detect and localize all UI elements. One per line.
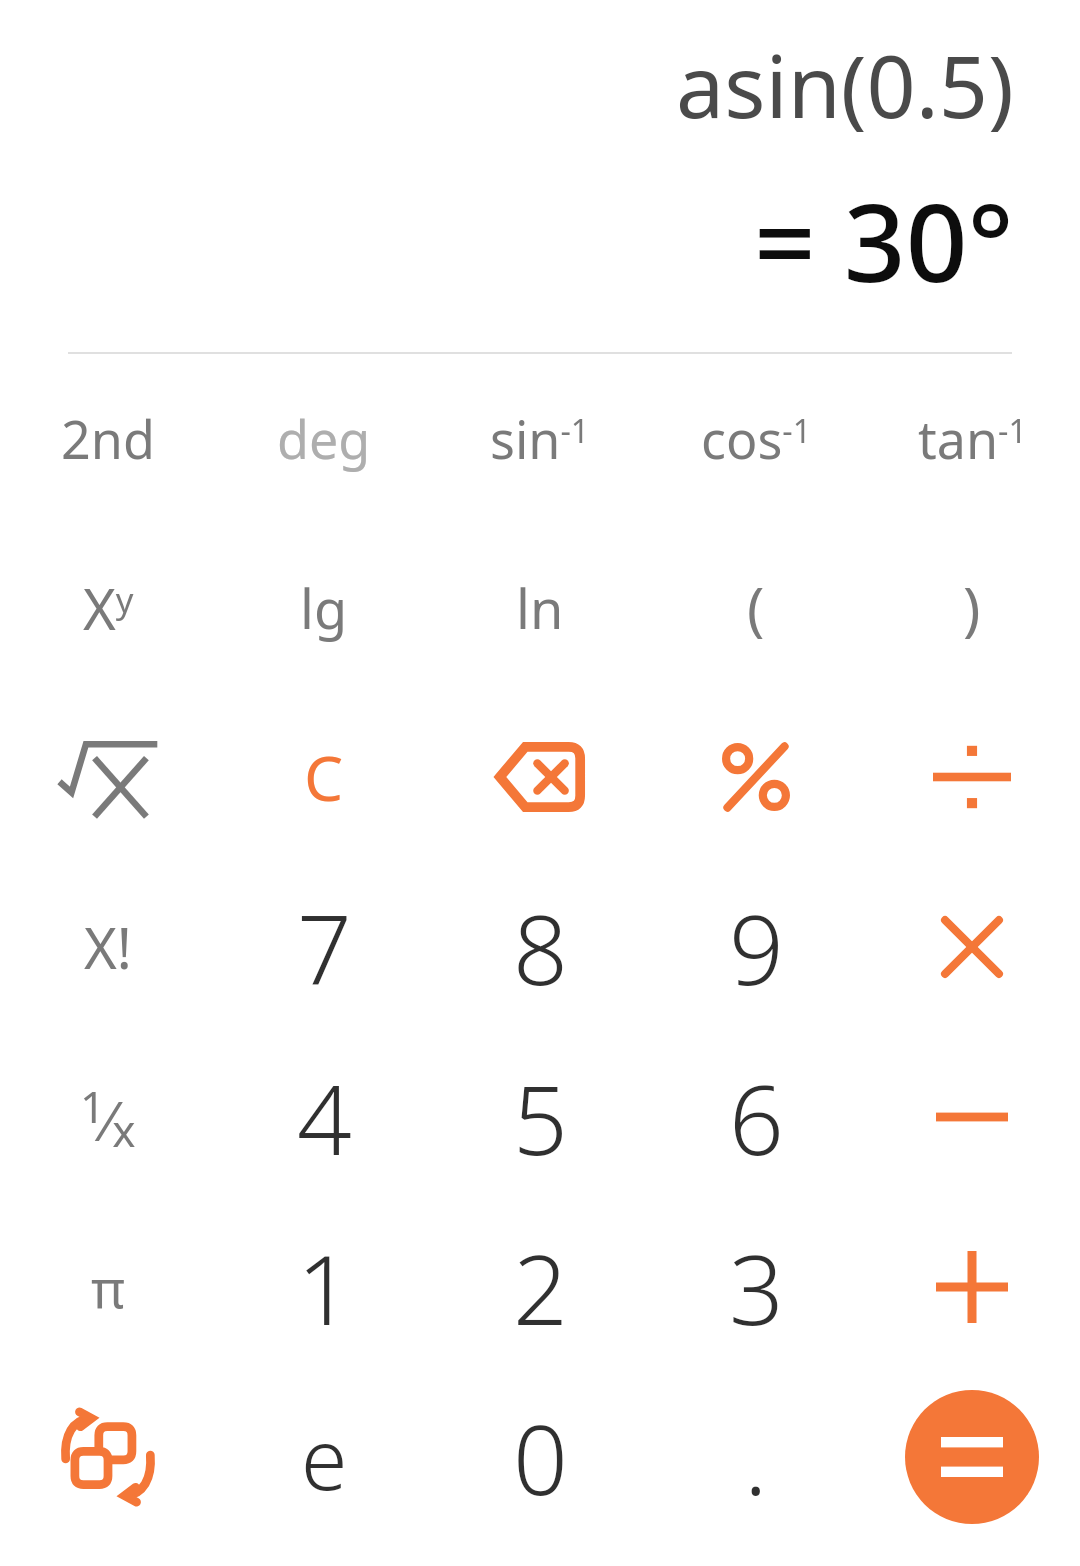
button[interactable]: Minus xyxy=(864,1032,1080,1202)
staticText: 7 xyxy=(297,882,352,1013)
button[interactable]: 2 xyxy=(432,1202,648,1372)
staticText: ( xyxy=(747,568,765,647)
button[interactable]: cos-1 xyxy=(648,354,864,523)
button[interactable]: deg xyxy=(216,354,432,523)
button[interactable]: 7 xyxy=(216,862,432,1032)
button[interactable]: Backspace xyxy=(432,692,648,862)
button[interactable]: 2nd xyxy=(0,354,216,523)
staticText: cos-1 xyxy=(701,403,812,474)
button[interactable]: 8 xyxy=(432,862,648,1032)
staticText: lg xyxy=(300,571,348,645)
staticText: 6 xyxy=(729,1052,784,1183)
button[interactable]: ) xyxy=(864,523,1080,692)
button[interactable]: ln xyxy=(432,523,648,692)
staticText: 8 xyxy=(513,882,568,1013)
staticText: tan-1 xyxy=(918,403,1027,474)
staticText: X! xyxy=(84,909,132,985)
button[interactable]: C xyxy=(216,692,432,862)
staticText: sin-1 xyxy=(490,403,590,474)
button[interactable]: 0 xyxy=(432,1372,648,1542)
button[interactable]: 4 xyxy=(216,1032,432,1202)
staticText: 9 xyxy=(729,882,784,1013)
staticText: 4 xyxy=(297,1052,352,1183)
button[interactable]: π xyxy=(0,1202,216,1372)
button[interactable]: Divide xyxy=(864,692,1080,862)
button[interactable]: 1⁄x xyxy=(0,1032,216,1202)
button[interactable]: X! xyxy=(0,862,216,1032)
staticText: π xyxy=(91,1252,125,1323)
staticText: 1⁄x xyxy=(80,1076,136,1159)
staticText: asin(0.5) xyxy=(676,26,1014,143)
button[interactable]: tan-1 xyxy=(864,354,1080,523)
staticText: = 30° xyxy=(754,167,1014,314)
button[interactable]: . xyxy=(648,1372,864,1542)
button[interactable]: 1 xyxy=(216,1202,432,1372)
staticText: 2nd xyxy=(61,403,155,474)
button[interactable]: 6 xyxy=(648,1032,864,1202)
button[interactable]: e xyxy=(216,1372,432,1542)
button[interactable]: lg xyxy=(216,523,432,692)
button[interactable]: ( xyxy=(648,523,864,692)
staticText: 0 xyxy=(513,1392,568,1523)
staticText: Xy xyxy=(83,570,134,646)
staticText: ln xyxy=(516,571,564,645)
staticText: 5 xyxy=(513,1052,568,1183)
button[interactable]: Plus xyxy=(864,1202,1080,1372)
button[interactable]: Square root xyxy=(0,692,216,862)
staticText: C xyxy=(304,735,344,819)
staticText: 2 xyxy=(513,1222,568,1353)
staticText: deg xyxy=(277,403,371,474)
button[interactable]: Xy xyxy=(0,523,216,692)
button[interactable]: Equals xyxy=(905,1390,1039,1524)
staticText: ) xyxy=(963,568,981,647)
staticText: 1 xyxy=(297,1222,352,1353)
button[interactable]: 9 xyxy=(648,862,864,1032)
staticText: . xyxy=(744,1392,768,1523)
button[interactable]: Percent xyxy=(648,692,864,862)
staticText: 3 xyxy=(729,1222,784,1353)
button[interactable]: 5 xyxy=(432,1032,648,1202)
staticText: e xyxy=(301,1400,348,1514)
button[interactable]: Multiply xyxy=(864,862,1080,1032)
button[interactable]: Unit converter xyxy=(0,1372,216,1542)
button[interactable]: sin-1 xyxy=(432,354,648,523)
button[interactable]: 3 xyxy=(648,1202,864,1372)
